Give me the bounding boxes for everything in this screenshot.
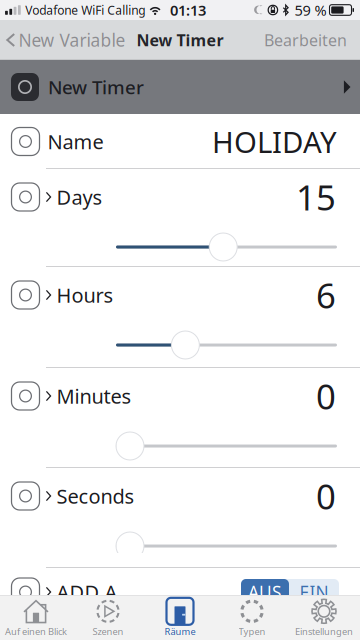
button[interactable]: Auf einen Blick (0, 595, 72, 640)
staticText: 0 (316, 373, 336, 419)
staticText: Typen (238, 625, 265, 638)
staticText: Name (47, 128, 103, 155)
staticText: 6 (316, 272, 336, 318)
staticText: Hours (57, 282, 114, 308)
staticText: 59 % (294, 0, 326, 20)
staticText: New Timer (48, 75, 144, 99)
staticText: ADD A (57, 579, 118, 605)
staticText: Einstellungen (295, 625, 353, 638)
staticText: EIN (299, 580, 328, 603)
staticText: Minutes (57, 383, 132, 409)
button[interactable]: New Timer (0, 60, 360, 114)
button[interactable]: Typen (216, 595, 288, 640)
staticText: 15 (296, 174, 336, 220)
button[interactable]: Einstellungen (288, 595, 360, 640)
staticText: 0 (316, 473, 336, 519)
staticText: Seconds (57, 483, 135, 509)
staticText: New Timer (136, 29, 223, 51)
button[interactable]: Szenen (72, 595, 144, 640)
button[interactable]: New Variable (0, 21, 125, 58)
staticText: Days (57, 184, 103, 210)
staticText: 01:13 (170, 0, 206, 20)
staticText: Szenen (92, 625, 123, 638)
staticText: Bearbeiten (264, 29, 347, 51)
button[interactable]: Räume (144, 595, 216, 640)
button[interactable]: Name (0, 114, 360, 169)
staticText: New Variable (18, 28, 125, 51)
button[interactable]: Bearbeiten (264, 22, 360, 58)
staticText: HOLIDAY (212, 122, 337, 161)
staticText: Räume (164, 625, 195, 638)
staticText: Auf einen Blick (5, 625, 67, 638)
staticText: AUS (248, 580, 282, 603)
staticText: Vodafone WiFi Calling (25, 2, 145, 18)
